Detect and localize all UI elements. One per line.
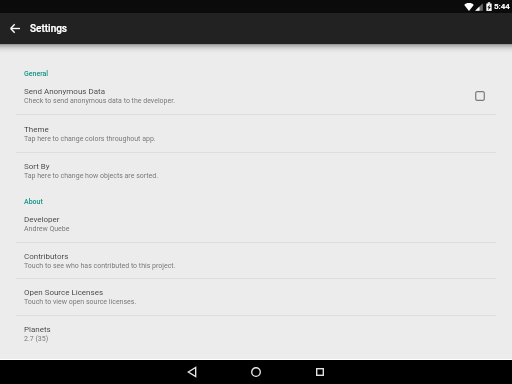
staticText: 5:44 (494, 2, 510, 11)
button[interactable]: Navigate up (0, 13, 30, 44)
staticText: Developer (24, 215, 60, 224)
staticText: Tap here to change colors throughout app… (24, 135, 156, 143)
button[interactable]: Contributors (0, 243, 512, 278)
staticText: Check to send anonymous data to the deve… (24, 97, 176, 105)
button[interactable]: Recent apps (308, 360, 332, 384)
button[interactable]: Planets (0, 316, 512, 352)
button[interactable]: Developer (0, 205, 512, 242)
button[interactable]: Send Anonymous Data (0, 77, 512, 114)
staticText: About (24, 198, 43, 206)
staticText: Touch to view open source licenses. (24, 298, 137, 306)
staticText: Touch to see who has contributed to this… (24, 262, 176, 270)
staticText: Settings (30, 23, 68, 35)
staticText: Open Source Licenses (24, 288, 104, 297)
staticText: 2.7 (35) (24, 335, 49, 343)
staticText: Sort By (24, 162, 50, 171)
staticText: Contributors (24, 252, 69, 261)
staticText: Tap here to change how objects are sorte… (24, 172, 159, 180)
staticText: General (24, 70, 49, 78)
button[interactable]: Open Source Licenses (0, 279, 512, 315)
button[interactable]: Sort By (0, 153, 512, 189)
button[interactable]: Theme (0, 115, 512, 152)
button[interactable]: Back (180, 360, 204, 384)
staticText: Andrew Quebe (24, 225, 70, 233)
staticText: Planets (24, 325, 51, 334)
staticText: Theme (24, 125, 49, 134)
staticText: Send Anonymous Data (24, 87, 105, 96)
button[interactable]: Home (244, 360, 268, 384)
